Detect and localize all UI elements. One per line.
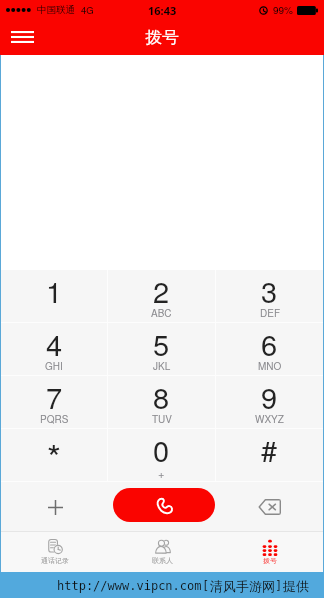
button[interactable]: 4: [1, 323, 107, 375]
button[interactable]: 5: [108, 323, 215, 375]
button[interactable]: 8: [108, 376, 215, 428]
staticText: 拨号: [263, 556, 277, 565]
staticText: PQRS: [40, 412, 69, 426]
staticText: 通话记录: [41, 556, 69, 565]
staticText: [: [202, 579, 210, 593]
staticText: DEF: [260, 306, 280, 320]
staticText: 0: [153, 429, 170, 471]
staticText: 清风手游网: [210, 578, 275, 594]
staticText: MNO: [258, 359, 282, 373]
button[interactable]: 9: [216, 376, 323, 428]
staticText: 9: [261, 376, 278, 418]
button[interactable]: *: [1, 429, 107, 481]
staticText: 4: [46, 323, 63, 365]
button[interactable]: 2: [108, 270, 215, 322]
staticText: JKL: [153, 359, 171, 373]
button[interactable]: 0: [108, 429, 215, 481]
staticText: *: [47, 430, 62, 482]
button[interactable]: 7: [1, 376, 107, 428]
button[interactable]: #: [216, 429, 323, 481]
staticText: 16:43: [148, 3, 177, 18]
button[interactable]: 拨号: [216, 532, 323, 572]
button[interactable]: 3: [216, 270, 323, 322]
staticText: +: [158, 465, 165, 481]
button[interactable]: Menu: [0, 20, 44, 55]
staticText: 拨号: [145, 27, 179, 48]
button[interactable]: Backspace: [216, 482, 323, 532]
staticText: http://www.vipcn.com: [57, 579, 202, 593]
staticText: ]: [275, 579, 283, 593]
staticText: 2: [153, 270, 170, 312]
staticText: 中国联通: [37, 4, 75, 16]
button[interactable]: Add pause: [1, 482, 109, 532]
staticText: 提供: [283, 578, 309, 594]
staticText: 4G: [81, 3, 94, 17]
staticText: 99%: [273, 3, 294, 17]
button[interactable]: 联系人: [109, 532, 216, 572]
staticText: 7: [46, 376, 63, 418]
staticText: TUV: [152, 412, 172, 426]
staticText: ABC: [151, 306, 172, 320]
button[interactable]: 通话记录: [1, 532, 109, 572]
staticText: 5: [153, 323, 170, 365]
staticText: 3: [261, 270, 278, 312]
button[interactable]: 1: [1, 270, 107, 322]
button[interactable]: 6: [216, 323, 323, 375]
staticText: WXYZ: [255, 412, 284, 426]
staticText: 联系人: [152, 556, 173, 565]
staticText: GHI: [45, 359, 63, 373]
staticText: 8: [153, 376, 170, 418]
staticText: 1: [46, 270, 63, 312]
button[interactable]: Call: [113, 488, 215, 522]
staticText: 6: [261, 323, 278, 365]
staticText: #: [261, 429, 278, 471]
